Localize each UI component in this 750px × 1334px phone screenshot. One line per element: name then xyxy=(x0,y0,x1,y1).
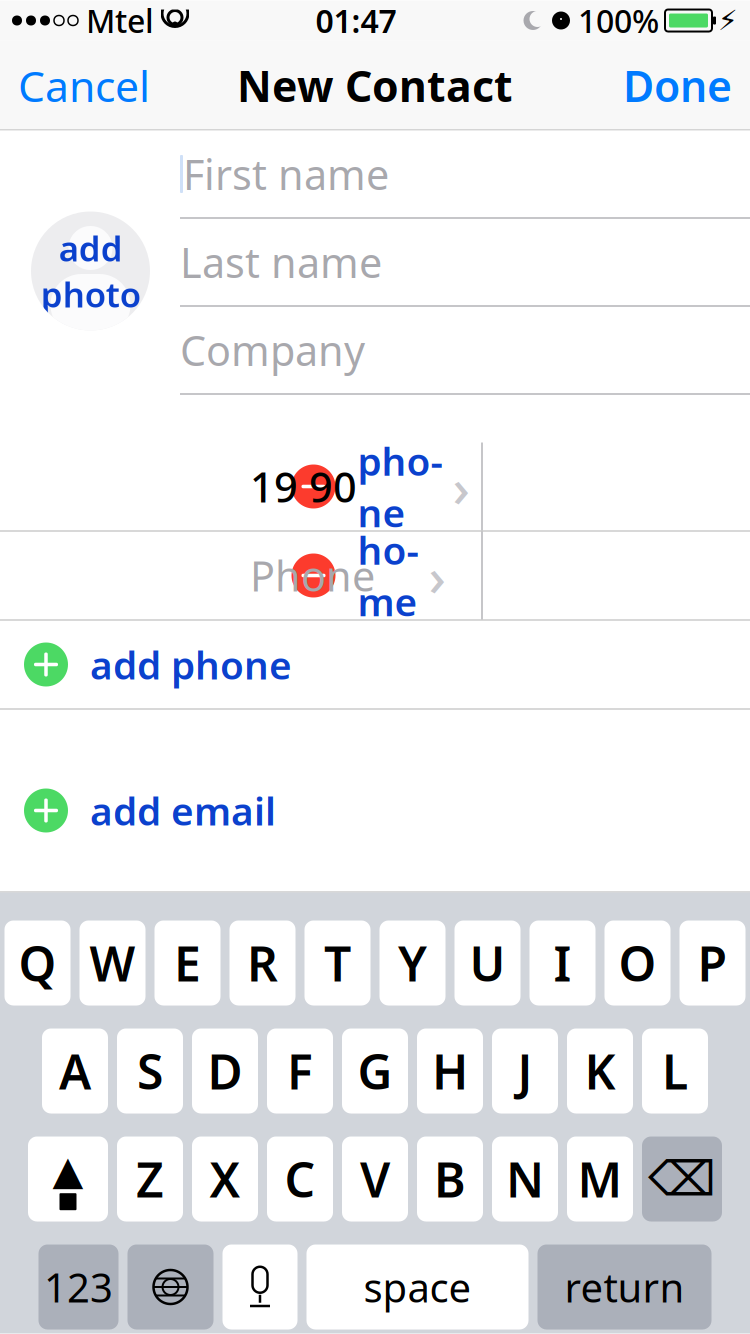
staticText: J xyxy=(517,1039,532,1103)
button[interactable]: H xyxy=(417,1028,483,1113)
button[interactable]: Shift xyxy=(28,1136,108,1221)
staticText: O xyxy=(618,931,656,995)
staticText: A xyxy=(59,1039,91,1103)
staticText: Last name xyxy=(180,235,382,289)
button[interactable]: add phone xyxy=(0,620,750,708)
staticText: S xyxy=(137,1039,163,1103)
button[interactable]: space xyxy=(306,1244,528,1329)
button[interactable]: B xyxy=(417,1136,483,1221)
button[interactable]: return xyxy=(537,1244,711,1329)
staticText: D xyxy=(207,1039,242,1103)
button[interactable]: W xyxy=(79,920,145,1005)
staticText: P xyxy=(697,931,727,995)
button[interactable]: P xyxy=(679,920,745,1005)
button[interactable]: V xyxy=(342,1136,408,1221)
staticText: G xyxy=(357,1039,392,1103)
button[interactable]: L xyxy=(642,1028,708,1113)
staticText: New Contact xyxy=(237,57,513,114)
button[interactable]: Done xyxy=(605,40,750,130)
staticText: add photo xyxy=(40,225,140,317)
staticText: ⌫ xyxy=(648,1152,716,1206)
button[interactable]: E xyxy=(154,920,220,1005)
button[interactable]: F xyxy=(267,1028,333,1113)
button[interactable]: C xyxy=(267,1136,333,1221)
staticText: I xyxy=(553,931,571,995)
button[interactable]: Add photo xyxy=(31,211,150,330)
button[interactable]: U xyxy=(454,920,520,1005)
staticText: add email xyxy=(90,785,276,836)
staticText: H xyxy=(432,1039,468,1103)
staticText: V xyxy=(360,1147,390,1211)
button[interactable]: X xyxy=(192,1136,258,1221)
button[interactable]: Last name xyxy=(180,218,750,306)
button[interactable]: J xyxy=(492,1028,558,1113)
staticText: F xyxy=(287,1039,313,1103)
staticText: › xyxy=(428,540,445,611)
staticText: 19 90 xyxy=(250,459,357,514)
button[interactable]: Delete xyxy=(642,1136,722,1221)
staticText: Q xyxy=(18,931,56,995)
staticText: X xyxy=(209,1147,240,1211)
button[interactable]: D xyxy=(192,1028,258,1113)
staticText: Mtel xyxy=(86,0,154,42)
staticText: ⚡︎ xyxy=(718,5,738,36)
staticText: Done xyxy=(623,57,732,114)
staticText: 100% xyxy=(578,0,659,42)
button[interactable]: A xyxy=(42,1028,108,1113)
button[interactable]: O xyxy=(604,920,670,1005)
staticText: home xyxy=(357,524,418,627)
staticText: K xyxy=(584,1039,615,1103)
staticText: Cancel xyxy=(18,57,150,114)
button[interactable]: Y xyxy=(379,920,445,1005)
staticText: add phone xyxy=(90,639,292,690)
staticText: L xyxy=(662,1039,688,1103)
button[interactable]: 123 xyxy=(38,1244,118,1329)
button[interactable]: T xyxy=(304,920,370,1005)
button[interactable]: add email xyxy=(0,766,750,854)
staticText: R xyxy=(247,931,278,995)
staticText: return xyxy=(564,1260,684,1313)
button[interactable]: Z xyxy=(117,1136,183,1221)
staticText: 01:47 xyxy=(315,0,396,42)
staticText: Phone xyxy=(250,548,375,603)
staticText: N xyxy=(506,1147,544,1211)
staticText: Z xyxy=(136,1147,164,1211)
staticText: space xyxy=(363,1260,471,1313)
staticText: First name xyxy=(183,147,389,201)
staticText: Company xyxy=(180,323,365,377)
button[interactable]: Next keyboard xyxy=(127,1244,213,1329)
button[interactable]: R xyxy=(229,920,295,1005)
staticText: T xyxy=(324,931,351,995)
staticText: U xyxy=(469,931,505,995)
staticText: phone xyxy=(357,435,442,538)
button[interactable]: M xyxy=(567,1136,633,1221)
button[interactable]: N xyxy=(492,1136,558,1221)
staticText: › xyxy=(452,451,469,522)
button[interactable]: Dictate xyxy=(222,1244,297,1329)
staticText: Y xyxy=(398,931,427,995)
button[interactable]: First name xyxy=(180,130,750,218)
staticText: C xyxy=(284,1147,315,1211)
button[interactable]: phone xyxy=(0,442,750,531)
button[interactable]: Company xyxy=(180,306,750,394)
staticText: ▲ xyxy=(52,1148,83,1193)
staticText: M xyxy=(577,1147,622,1211)
staticText: E xyxy=(174,931,201,995)
button[interactable]: S xyxy=(117,1028,183,1113)
button[interactable]: I xyxy=(529,920,595,1005)
button[interactable]: home xyxy=(0,531,750,620)
button[interactable]: Cancel xyxy=(0,40,168,130)
staticText: 123 xyxy=(44,1260,113,1313)
button[interactable]: K xyxy=(567,1028,633,1113)
staticText: B xyxy=(434,1147,466,1211)
staticText: W xyxy=(89,931,135,995)
button[interactable]: G xyxy=(342,1028,408,1113)
button[interactable]: Q xyxy=(4,920,70,1005)
